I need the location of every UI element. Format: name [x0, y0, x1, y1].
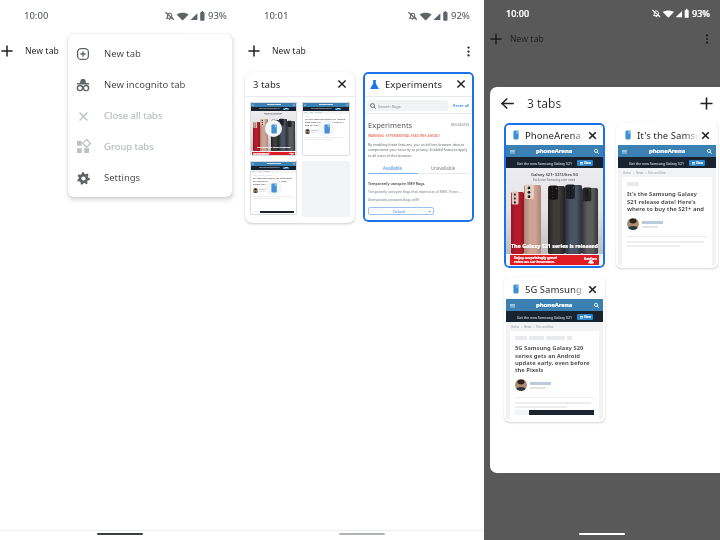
- staticText: 10:01: [264, 9, 289, 22]
- staticText: ›: [313, 112, 315, 114]
- button[interactable]: phoneArena: [302, 102, 350, 156]
- button[interactable]: Settings: [68, 162, 232, 193]
- staticText: ›: [644, 171, 648, 175]
- staticText: 92%: [451, 9, 470, 22]
- button[interactable]: phoneArena: [250, 102, 297, 156]
- button[interactable]: New tab: [695, 92, 717, 114]
- staticText: Group tabs: [104, 140, 154, 153]
- button[interactable]: Group tabs: [68, 131, 232, 162]
- button[interactable]: Close tab: [586, 283, 599, 296]
- button[interactable]: New tab: [68, 38, 232, 69]
- button[interactable]: New tab: [0, 44, 14, 58]
- staticText: View: [285, 108, 288, 110]
- staticText: 10:00: [24, 9, 49, 22]
- staticText: This and that: [263, 171, 270, 173]
- staticText: Galaxy S21• S21Ultra 5G: [531, 172, 579, 177]
- staticText: View: [584, 315, 591, 319]
- staticText: Get the new Samsung Galaxy S21: [517, 161, 572, 166]
- staticText: 5G Samsung Galaxy S20 series gets an And…: [253, 177, 294, 186]
- staticText: phoneArena: [267, 103, 281, 106]
- staticText: Available: [383, 165, 403, 171]
- staticText: ›: [308, 112, 310, 114]
- staticText: News: [636, 171, 644, 175]
- staticText: This and that: [648, 171, 666, 175]
- button[interactable]: Close: [454, 77, 468, 91]
- button[interactable]: Close tab: [699, 129, 712, 142]
- staticText: New tab: [510, 33, 544, 45]
- staticText: Get the new Samsung Galaxy S21: [311, 108, 333, 110]
- button[interactable]: Close tab: [586, 129, 599, 142]
- staticText: Get the new Samsung Galaxy S21: [259, 167, 281, 169]
- staticText: ›: [532, 325, 536, 329]
- button[interactable]: phoneArena: [250, 161, 297, 215]
- staticText: ›: [256, 171, 258, 173]
- staticText: Default: [393, 209, 406, 214]
- staticText: Exclusive Samsung.com rates: [533, 178, 576, 182]
- staticText: View: [696, 161, 703, 165]
- staticText: New tab: [272, 45, 306, 57]
- staticText: Galaxy S21• S21Ultra 5G: [264, 112, 283, 114]
- staticText: Home: [304, 112, 308, 114]
- staticText: phoneArena: [536, 301, 573, 309]
- staticText: StateFarm: [584, 257, 597, 260]
- staticText: Close all tabs: [104, 109, 163, 122]
- staticText: 93%: [208, 9, 227, 22]
- staticText: It's the Samsung Galaxy S21 release date…: [627, 190, 707, 212]
- staticText: Experiments: [368, 120, 413, 130]
- button[interactable]: New tab: [247, 44, 261, 58]
- staticText: View: [285, 167, 288, 169]
- staticText: It's the Samsu: [637, 129, 699, 142]
- staticText: 3 tabs: [527, 95, 562, 111]
- staticText: This and that: [315, 112, 322, 114]
- staticText: Experiments: [385, 78, 443, 91]
- staticText: PhoneArena -: [525, 129, 586, 142]
- staticText: Enjoy surprisingly great rates on car in…: [514, 255, 558, 265]
- staticText: View: [337, 108, 340, 110]
- staticText: The Galaxy S21 series is released: [511, 242, 598, 249]
- staticText: Get the new Samsung Galaxy S21: [517, 315, 572, 320]
- staticText: 93%: [692, 7, 710, 19]
- staticText: phoneArena: [649, 147, 686, 155]
- staticText: phoneArena: [536, 147, 573, 155]
- staticText: ›: [520, 325, 524, 329]
- button[interactable]: Close all tabs: [68, 100, 232, 131]
- staticText: News: [258, 171, 261, 173]
- staticText: New tab: [25, 45, 59, 57]
- staticText: By enabling these features, you could lo…: [368, 142, 469, 158]
- button[interactable]: Close: [335, 77, 349, 91]
- staticText: 3 tabs: [253, 78, 281, 91]
- staticText: WARNING: EXPERIMENTAL FEATURES AHEAD!: [368, 133, 440, 138]
- staticText: News: [524, 325, 532, 329]
- button[interactable]: Back: [496, 92, 518, 114]
- staticText: Home: [623, 171, 632, 175]
- staticText: The Galaxy S21 series is released: [257, 146, 291, 149]
- staticText: This and that: [536, 325, 554, 329]
- staticText: phoneArena: [267, 162, 281, 165]
- staticText: Exclusive Samsung.com rates: [265, 114, 282, 116]
- staticText: Enjoy surprisingly great rates on car in…: [253, 152, 270, 156]
- staticText: Search flags: [378, 104, 401, 109]
- staticText: Reset all: [453, 103, 470, 108]
- staticText: phoneArena: [319, 103, 333, 106]
- button[interactable]: New incognito tab: [68, 69, 232, 100]
- staticText: ›: [261, 171, 263, 173]
- staticText: 89.0.4324.93: [451, 123, 469, 127]
- staticText: Temporarily unexpire M89 flags.: [368, 181, 426, 186]
- staticText: Temporarily unexpire flags that expired …: [368, 189, 462, 194]
- staticText: New tab: [104, 47, 141, 60]
- staticText: News: [310, 112, 313, 114]
- staticText: 10:00: [506, 7, 530, 19]
- button[interactable]: More options: [459, 42, 477, 60]
- staticText: View: [584, 161, 591, 165]
- button[interactable]: It's the Samsu: [616, 123, 718, 268]
- staticText: New incognito tab: [104, 78, 186, 91]
- staticText: Home: [511, 325, 520, 329]
- button[interactable]: PhoneArena -: [504, 123, 605, 268]
- staticText: Get the new Samsung Galaxy S21: [259, 108, 281, 110]
- staticText: Get the new Samsung Galaxy S21: [629, 161, 684, 166]
- staticText: Home: [252, 171, 256, 173]
- staticText: Unavailable: [431, 165, 456, 171]
- staticText: 5G Samsung Galaxy S20 series gets an And…: [515, 344, 594, 373]
- button[interactable]: 5G Samsung G: [504, 277, 605, 422]
- staticText: #temporary-unexpire-flags-m89: [368, 197, 420, 202]
